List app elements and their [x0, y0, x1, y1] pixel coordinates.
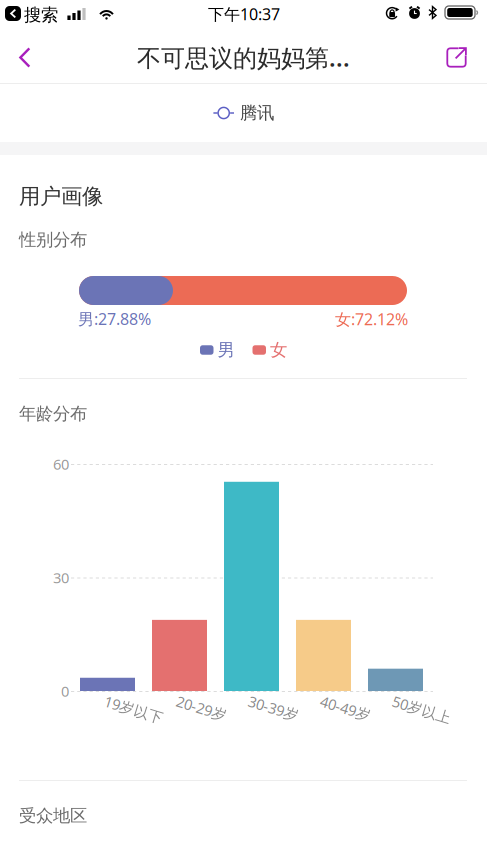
- staticText: 50岁以上: [395, 691, 456, 711]
- staticText: 19岁以下: [107, 691, 168, 711]
- staticText: 男: [217, 339, 234, 361]
- staticText: 60: [53, 454, 69, 474]
- button[interactable]: 返回: [0, 32, 51, 83]
- staticText: 20-29岁: [179, 691, 231, 711]
- staticText: 女: [270, 339, 287, 361]
- staticText: 腾讯: [240, 102, 274, 124]
- button[interactable]: 分享: [426, 32, 487, 83]
- staticText: 不可思议的妈妈第...: [137, 42, 350, 73]
- staticText: 0: [61, 681, 69, 701]
- staticText: 女:72.12%: [335, 308, 408, 330]
- staticText: 30-39岁: [251, 691, 303, 711]
- staticText: 下午10:37: [208, 3, 280, 25]
- staticText: 30: [53, 568, 69, 587]
- staticText: 性别分布: [19, 229, 87, 250]
- staticText: 男:27.88%: [78, 308, 151, 329]
- staticText: 年龄分布: [19, 403, 87, 424]
- staticText: 40-49岁: [323, 691, 375, 711]
- staticText: 搜索: [24, 4, 58, 26]
- staticText: 用户画像: [19, 183, 103, 209]
- staticText: 受众地区: [19, 805, 87, 826]
